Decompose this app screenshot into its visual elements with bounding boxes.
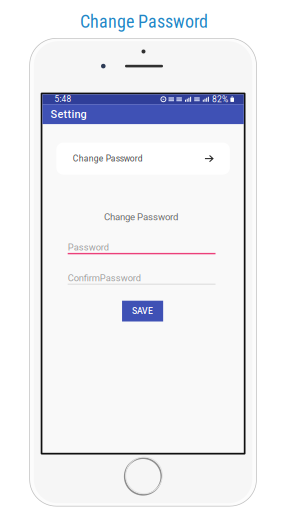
staticText: SAVE bbox=[132, 306, 153, 316]
staticText: Change Password bbox=[104, 211, 178, 223]
staticText: Setting bbox=[51, 108, 87, 120]
staticText: Change Password bbox=[73, 154, 143, 164]
staticText: ConfirmPassword bbox=[68, 273, 141, 284]
staticText: 5:48 bbox=[54, 94, 71, 104]
button[interactable]: SAVE bbox=[122, 301, 163, 321]
staticText: Password bbox=[68, 242, 109, 253]
button[interactable]: Change Password bbox=[56, 143, 230, 175]
staticText: Change Password bbox=[80, 11, 208, 32]
staticText: 82% bbox=[212, 94, 228, 104]
